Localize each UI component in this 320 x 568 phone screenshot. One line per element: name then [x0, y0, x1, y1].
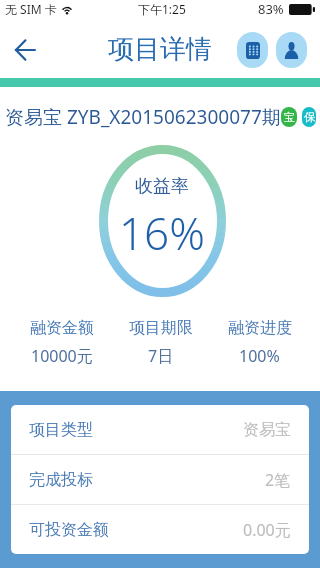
- staticText: 完成投标: [29, 470, 93, 490]
- staticText: 0.00元: [243, 519, 291, 541]
- staticText: 宝: [284, 110, 295, 124]
- staticText: 2笔: [265, 469, 291, 491]
- button[interactable]: Profile: [276, 32, 307, 68]
- staticText: 融资进度: [228, 318, 292, 338]
- button[interactable]: 可投资金额: [11, 505, 309, 554]
- staticText: 资易宝 ZYB_X2015062300077期: [5, 104, 281, 130]
- staticText: 100%: [239, 345, 280, 367]
- staticText: 融资金额: [30, 318, 94, 338]
- staticText: 项目类型: [29, 420, 93, 440]
- staticText: 可投资金额: [29, 520, 109, 540]
- staticText: 资易宝: [243, 420, 291, 440]
- staticText: 下午1:25: [138, 1, 186, 17]
- staticText: 7日: [148, 345, 174, 367]
- staticText: 项目详情: [108, 33, 212, 66]
- staticText: 保: [304, 110, 315, 124]
- button[interactable]: Back: [5, 30, 45, 70]
- staticText: 无 SIM 卡: [5, 1, 57, 17]
- staticText: 83%: [258, 0, 284, 18]
- staticText: 收益率: [135, 175, 189, 198]
- staticText: 10000元: [31, 345, 93, 367]
- button[interactable]: Calculator: [237, 32, 268, 68]
- staticText: 16%: [119, 203, 205, 263]
- staticText: 项目期限: [129, 318, 193, 338]
- button[interactable]: 项目类型: [11, 405, 309, 454]
- button[interactable]: 完成投标: [11, 455, 309, 504]
